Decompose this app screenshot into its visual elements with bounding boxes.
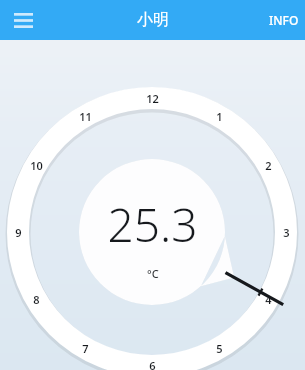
staticText: 4 [265,292,272,307]
staticText: 8 [33,292,40,307]
staticText: 3 [283,225,290,240]
staticText: 25.3 [107,193,198,256]
staticText: 12 [146,91,159,106]
staticText: 2 [265,158,272,173]
staticText: 5 [216,341,223,356]
staticText: 10 [30,158,43,173]
staticText: 7 [82,341,89,356]
staticText: °C [147,266,159,281]
staticText: 6 [149,358,156,370]
staticText: 小明 [137,10,169,30]
button[interactable]: Menu [6,3,40,37]
button[interactable]: INFO [263,2,305,38]
staticText: 11 [79,109,92,124]
staticText: INFO [269,12,299,28]
staticText: 9 [15,225,22,240]
staticText: 1 [216,109,223,124]
